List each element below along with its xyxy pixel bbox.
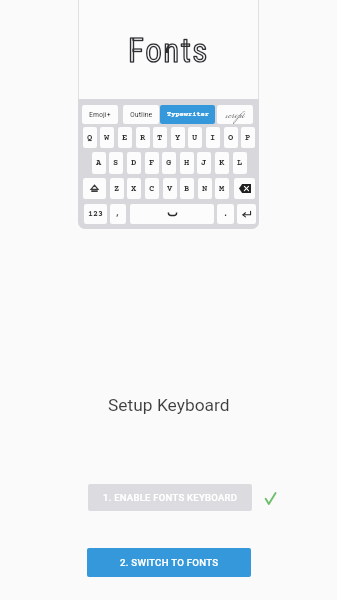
button[interactable]: Step 1 done — [259, 487, 281, 509]
button[interactable]: Space — [130, 204, 214, 224]
staticText: Emoji+ — [89, 110, 111, 119]
staticText: P — [245, 133, 251, 143]
button[interactable]: Typewriter — [160, 105, 215, 124]
staticText: Outline — [130, 110, 153, 119]
button[interactable]: Backspace — [234, 178, 255, 199]
button[interactable]: B — [180, 178, 194, 199]
button[interactable]: W — [100, 127, 114, 148]
staticText: R — [140, 133, 146, 143]
button[interactable]: R — [136, 127, 150, 148]
staticText: A — [96, 158, 102, 168]
staticText: M — [219, 184, 225, 194]
button[interactable]: Shift — [83, 178, 106, 199]
staticText: 2. SWITCH TO FONTS — [120, 557, 219, 568]
staticText: G — [166, 158, 172, 168]
staticText: S — [113, 158, 119, 168]
button[interactable]: K — [215, 152, 229, 174]
button[interactable]: 123 — [84, 204, 107, 224]
staticText: Q — [87, 133, 93, 143]
button[interactable]: J — [197, 152, 211, 174]
staticText: N — [202, 184, 208, 194]
button[interactable]: N — [198, 178, 212, 199]
staticText: , — [115, 209, 121, 219]
button[interactable]: O — [224, 127, 238, 148]
staticText: script — [225, 105, 245, 124]
button[interactable]: Emoji+ — [82, 105, 118, 124]
button[interactable]: Z — [110, 178, 124, 199]
staticText: U — [192, 133, 198, 143]
button[interactable]: P — [241, 127, 255, 148]
staticText: C — [149, 184, 155, 194]
button[interactable]: A — [92, 152, 106, 174]
staticText: I — [210, 133, 216, 143]
staticText: T — [157, 133, 163, 143]
staticText: Typewriter — [167, 111, 209, 119]
staticText: Y — [175, 133, 181, 143]
staticText: B — [184, 184, 190, 194]
button[interactable]: T — [153, 127, 167, 148]
button[interactable]: S — [109, 152, 123, 174]
button[interactable]: Y — [171, 127, 185, 148]
button[interactable]: , — [110, 204, 126, 224]
button[interactable]: D — [127, 152, 141, 174]
staticText: Fonts — [128, 31, 209, 70]
staticText: J — [201, 158, 207, 168]
staticText: . — [223, 209, 229, 219]
button[interactable]: X — [127, 178, 141, 199]
button[interactable]: script — [217, 105, 253, 124]
button[interactable]: U — [188, 127, 202, 148]
staticText: Z — [114, 184, 120, 194]
button[interactable]: L — [233, 152, 247, 174]
staticText: 1. ENABLE FONTS KEYBOARD — [103, 492, 238, 503]
button[interactable]: C — [145, 178, 159, 199]
button[interactable]: Q — [83, 127, 97, 148]
button[interactable]: 1. ENABLE FONTS KEYBOARD — [88, 484, 252, 511]
staticText: V — [167, 184, 173, 194]
staticText: X — [131, 184, 137, 194]
staticText: H — [184, 158, 190, 168]
button[interactable]: 2. SWITCH TO FONTS — [87, 548, 251, 577]
staticText: L — [237, 158, 243, 168]
button[interactable]: M — [215, 178, 229, 199]
staticText: O — [228, 133, 234, 143]
staticText: 123 — [88, 210, 103, 219]
button[interactable]: I — [206, 127, 220, 148]
button[interactable]: E — [118, 127, 132, 148]
staticText: E — [122, 133, 128, 143]
staticText: Setup Keyboard — [108, 395, 230, 415]
staticText: K — [219, 158, 225, 168]
button[interactable]: . — [217, 204, 234, 224]
staticText: W — [104, 133, 110, 143]
button[interactable]: H — [180, 152, 194, 174]
button[interactable]: F — [145, 152, 159, 174]
button[interactable]: Enter — [237, 204, 256, 224]
button[interactable]: Outline — [123, 105, 159, 124]
button[interactable]: G — [162, 152, 176, 174]
staticText: D — [131, 158, 137, 168]
button[interactable]: V — [163, 178, 177, 199]
staticText: F — [149, 158, 155, 168]
